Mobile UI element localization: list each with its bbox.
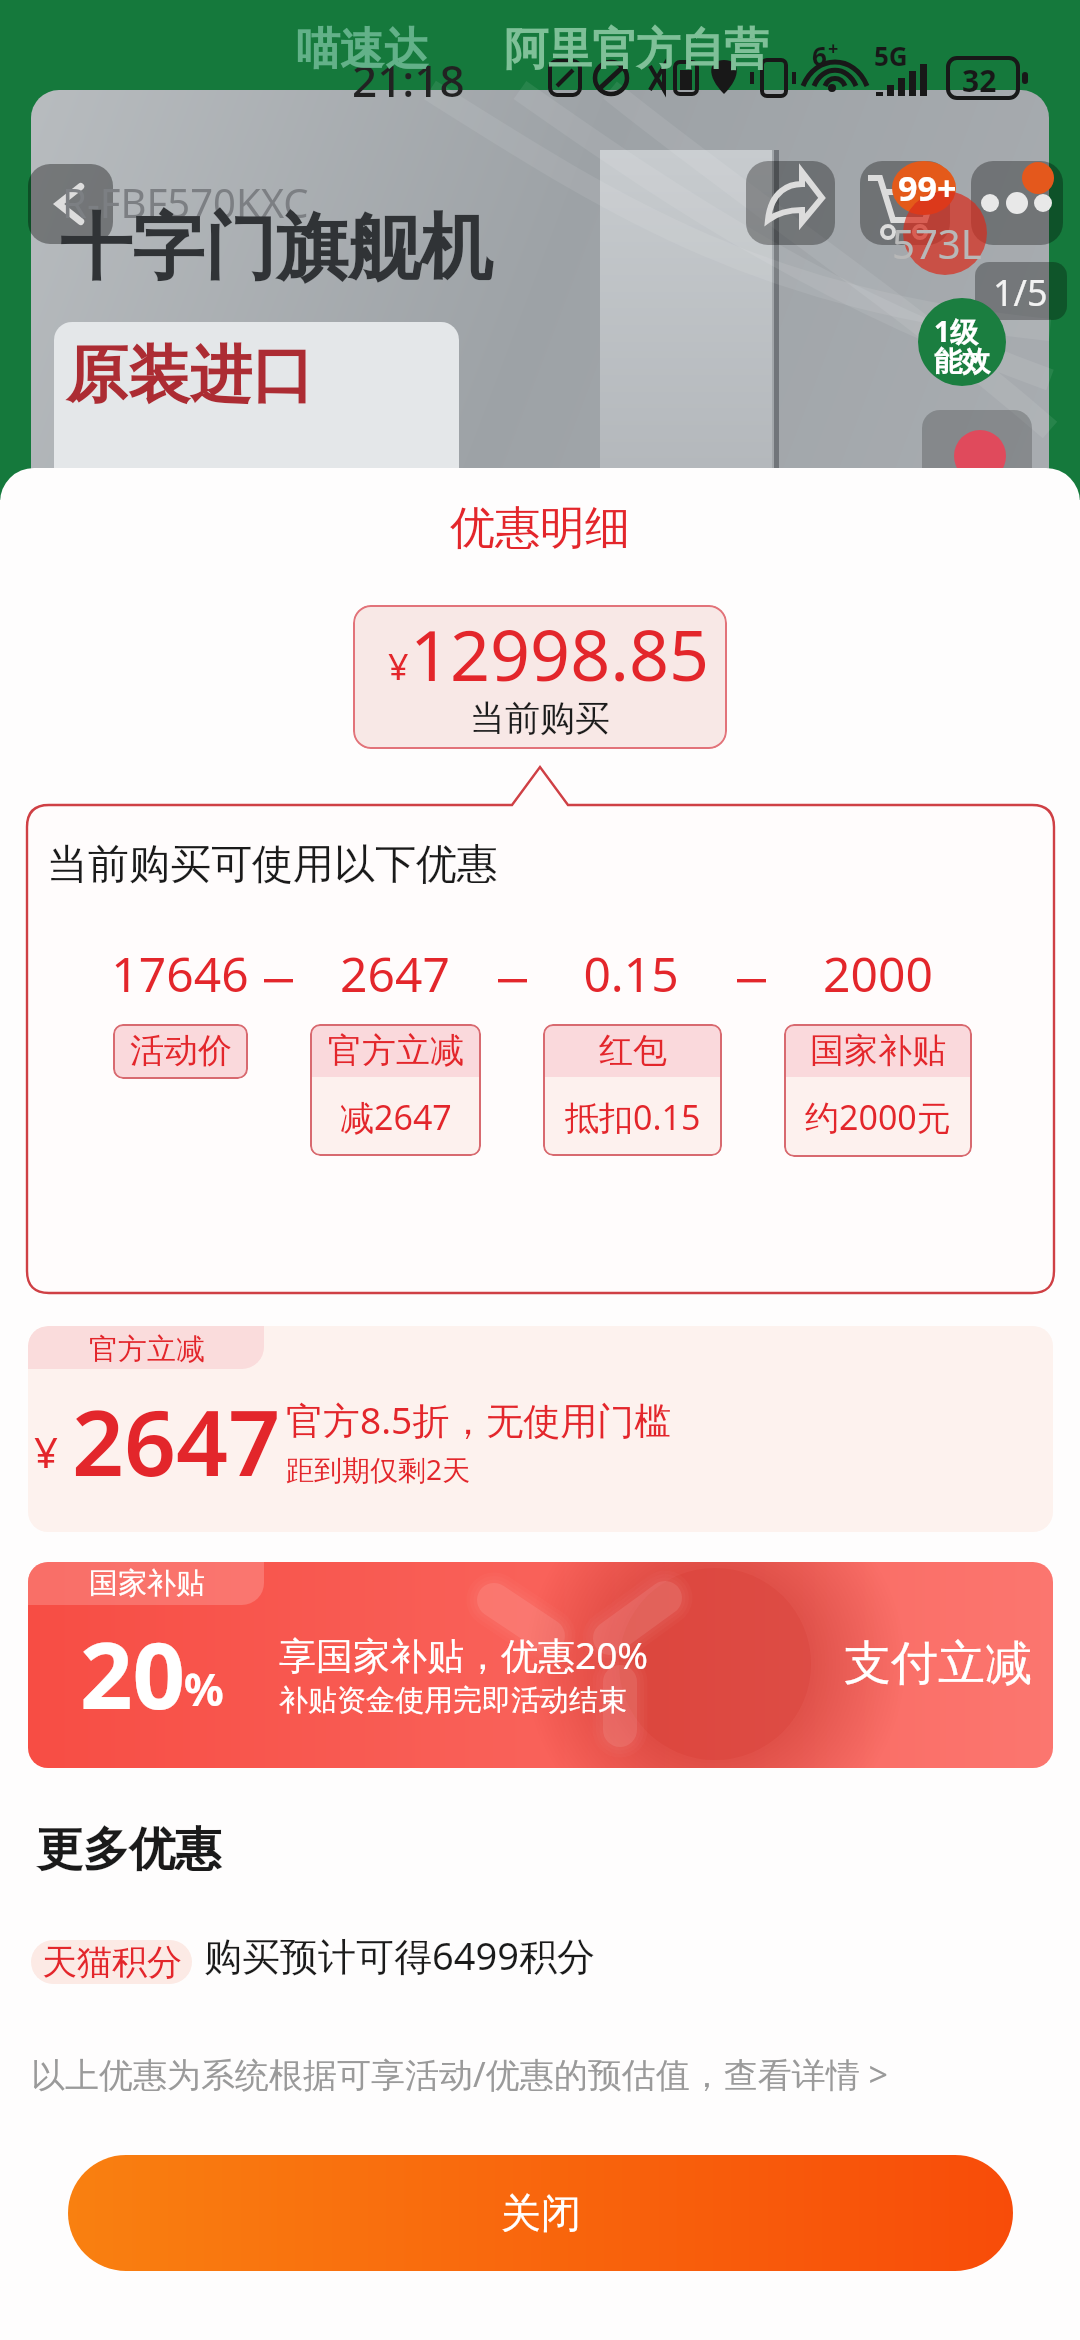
staticText: 1/5 [993, 268, 1048, 317]
button[interactable]: More [971, 161, 1063, 245]
staticText: 官方立减 [328, 1029, 464, 1072]
staticText: 优惠明细 [0, 500, 1080, 557]
staticText: 享国家补贴，优惠20% [279, 1629, 649, 1680]
staticText: 减2647 [340, 1094, 452, 1140]
staticText: 当前购买可使用以下优惠 [47, 839, 498, 891]
staticText: 购买预计可得6499积分 [204, 1929, 595, 1981]
staticText: % [184, 1659, 224, 1719]
staticText: 国家补贴 [810, 1029, 946, 1072]
staticText: 补贴资金使用完即活动结束 [279, 1682, 627, 1719]
staticText: 2000 [728, 941, 1028, 1006]
staticText: 20 [80, 1611, 186, 1736]
staticText: + [828, 36, 839, 61]
staticText: ¥ [34, 1423, 59, 1480]
button[interactable]: 关闭 [68, 2155, 1013, 2271]
staticText: 5G [874, 38, 908, 73]
staticText: 活动价 [130, 1029, 232, 1072]
staticText: 官方8.5折，无使用门槛 [286, 1394, 672, 1445]
staticText: 21:18 [352, 50, 465, 110]
staticText: 红包 [599, 1029, 667, 1072]
staticText: 12998.85 [410, 606, 710, 701]
staticText: 6 [812, 38, 827, 73]
button[interactable]: 红包 [543, 1024, 722, 1156]
staticText: 喵速达 [296, 22, 428, 77]
staticText: 官方立减 [89, 1331, 205, 1368]
staticText: 0.15 [481, 941, 781, 1006]
staticText: 32 [962, 60, 997, 101]
staticText: R-FBF570KXC [62, 175, 309, 229]
staticText: 十字门旗舰机 [60, 203, 492, 294]
button[interactable]: Share [746, 161, 835, 245]
staticText: 1级 [934, 312, 979, 350]
staticText: ¥ [388, 642, 409, 691]
staticText: 99+ [898, 165, 957, 211]
staticText: 更多优惠 [37, 1821, 221, 1879]
staticText: 原装进口 [66, 336, 314, 414]
button[interactable]: Cart [860, 161, 950, 245]
staticText: 国家补贴 [89, 1565, 205, 1602]
button[interactable]: 活动价 [113, 1024, 248, 1079]
button[interactable]: Back [28, 164, 113, 244]
staticText: 能效 [934, 344, 990, 379]
staticText: 以上优惠为系统根据可享活动/优惠的预估值，查看详情 > [31, 2051, 888, 2097]
staticText: 2647 [72, 1379, 281, 1503]
staticText: 当前购买 [353, 696, 727, 740]
button[interactable]: 官方立减 [310, 1024, 481, 1156]
button[interactable]: 国家补贴 [784, 1024, 972, 1157]
staticText: 距到期仅剩2天 [286, 1450, 471, 1488]
staticText: 关闭 [501, 2188, 581, 2238]
button[interactable]: 国家补贴 [28, 1562, 1053, 1768]
staticText: 抵扣0.15 [565, 1094, 701, 1140]
staticText: 573L [892, 216, 982, 270]
staticText: 天猫积分 [42, 1940, 182, 1984]
staticText: 阿里官方自营 [504, 22, 768, 77]
staticText: 约2000元 [805, 1094, 951, 1140]
staticText: 2647 [245, 941, 545, 1006]
staticText: 17646 [30, 941, 330, 1006]
button[interactable]: 官方立减 [28, 1326, 1053, 1532]
staticText: 支付立减 [844, 1634, 1032, 1693]
